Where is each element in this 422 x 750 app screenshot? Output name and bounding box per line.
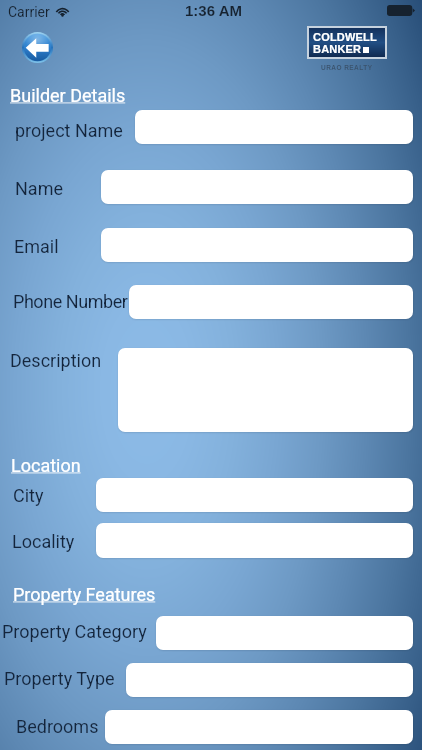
staticText: Bedrooms — [16, 716, 99, 737]
staticText: Property Category — [2, 621, 147, 642]
button[interactable] — [156, 616, 413, 650]
staticText: Description — [10, 350, 102, 371]
other: Battery full — [387, 5, 415, 16]
staticText: City — [13, 485, 44, 506]
button[interactable] — [101, 170, 413, 204]
button[interactable]: Coldwell Banker Urao Realty — [309, 28, 385, 57]
staticText: Property Features — [13, 584, 156, 605]
other: Wi-Fi — [56, 6, 69, 17]
button[interactable] — [118, 348, 413, 432]
button[interactable]: Back — [22, 32, 53, 63]
button[interactable] — [135, 110, 413, 144]
staticText: COLDWELL — [313, 31, 377, 43]
staticText: Builder Details — [10, 85, 126, 106]
staticText: Phone Number — [13, 291, 128, 312]
button[interactable] — [96, 523, 413, 558]
button[interactable] — [129, 285, 413, 319]
staticText: Email — [14, 236, 59, 257]
staticText: BANKER — [313, 43, 362, 55]
staticText: Name — [15, 178, 63, 199]
button[interactable] — [96, 478, 413, 512]
staticText: Location — [11, 455, 81, 476]
button[interactable] — [105, 710, 413, 744]
button[interactable] — [101, 228, 413, 262]
staticText: 1:36 AM — [185, 2, 242, 19]
staticText: project Name — [15, 120, 123, 141]
staticText: URAO REALTY — [321, 64, 373, 71]
staticText: Property Type — [4, 668, 115, 689]
staticText: Locality — [12, 531, 75, 552]
staticText: Carrier — [8, 4, 50, 20]
button[interactable] — [126, 663, 413, 697]
